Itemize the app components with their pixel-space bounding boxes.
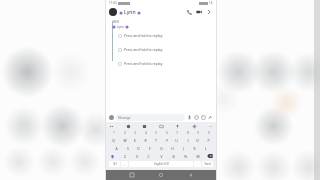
staticText: Lynn: [124, 9, 136, 16]
button[interactable]: Gallery: [201, 115, 206, 120]
staticText: D: [137, 146, 140, 151]
button[interactable]: Camera: [109, 115, 114, 120]
button[interactable]: Press and hold to replay: [118, 46, 210, 53]
staticText: Y: [166, 138, 168, 143]
button[interactable]: Keyboard tool 2: [126, 124, 131, 129]
button[interactable]: Y: [162, 136, 171, 144]
button[interactable]: 7: [172, 130, 181, 136]
button[interactable]: Shift: [108, 152, 117, 160]
staticText: E: [134, 138, 136, 143]
staticText: U: [175, 138, 178, 143]
button[interactable]: Keyboard tool 3: [142, 124, 147, 129]
button[interactable]: Video call: [196, 9, 202, 15]
button[interactable]: English (US): [129, 161, 193, 167]
button[interactable]: Keyboard tool 4: [159, 124, 164, 129]
staticText: .: [197, 162, 198, 166]
button[interactable]: Keyboard tool 6: [192, 124, 197, 129]
staticText: 0: [208, 131, 210, 135]
button[interactable]: Keyboard tool 5: [175, 124, 180, 129]
button[interactable]: Z: [120, 152, 129, 160]
button[interactable]: Back: [187, 171, 195, 179]
staticText: F: [149, 146, 151, 151]
button[interactable]: More options: [206, 9, 212, 15]
staticText: H: [171, 146, 174, 151]
button[interactable]: M: [193, 152, 202, 160]
button[interactable]: Message: [116, 114, 185, 121]
button[interactable]: !#1: [109, 161, 120, 167]
button[interactable]: .: [194, 161, 201, 167]
button[interactable]: L: [201, 144, 210, 152]
button[interactable]: O: [193, 136, 202, 144]
button[interactable]: I: [183, 136, 192, 144]
staticText: R: [144, 138, 147, 143]
staticText: M: [196, 154, 200, 159]
button[interactable]: Keyboard tool 1: [109, 124, 114, 129]
staticText: 1: [113, 131, 115, 135]
button[interactable]: 5: [151, 130, 160, 136]
button[interactable]: T: [151, 136, 160, 144]
button[interactable]: S: [123, 144, 132, 152]
staticText: I: [187, 138, 189, 143]
button[interactable]: Home: [157, 171, 165, 179]
button[interactable]: C: [144, 152, 153, 160]
button[interactable]: 2: [120, 130, 129, 136]
button[interactable]: Send: [202, 161, 213, 167]
staticText: V: [160, 154, 163, 159]
button[interactable]: W: [120, 136, 129, 144]
button[interactable]: Call: [186, 9, 192, 15]
button[interactable]: G: [157, 144, 166, 152]
button[interactable]: 3: [130, 130, 139, 136]
staticText: Q: [112, 138, 115, 143]
button[interactable]: 9: [193, 130, 202, 136]
staticText: Press and hold to replay: [124, 61, 163, 66]
button[interactable]: 4: [141, 130, 150, 136]
button[interactable]: A: [112, 144, 121, 152]
button[interactable]: F: [145, 144, 154, 152]
button[interactable]: Press and hold to replay: [118, 60, 210, 67]
staticText: 9: [197, 131, 199, 135]
staticText: L: [205, 146, 207, 151]
staticText: 5: [155, 131, 157, 135]
button[interactable]: Voice message: [187, 115, 192, 120]
button[interactable]: Emoji: [194, 115, 199, 120]
button[interactable]: D: [134, 144, 143, 152]
staticText: Press and hold to replay: [124, 33, 163, 38]
staticText: 7: [176, 131, 178, 135]
button[interactable]: Press and hold to replay: [118, 32, 210, 39]
button[interactable]: Keyboard tool 7: [208, 124, 213, 129]
button[interactable]: Q: [109, 136, 118, 144]
staticText: J: [183, 146, 184, 151]
staticText: N: [184, 154, 187, 159]
button[interactable]: P: [204, 136, 213, 144]
button[interactable]: Contact avatar: [109, 8, 117, 16]
button[interactable]: K: [190, 144, 199, 152]
button[interactable]: Backspace: [205, 152, 214, 160]
button[interactable]: V: [157, 152, 166, 160]
button[interactable]: J: [179, 144, 188, 152]
button[interactable]: ,: [121, 161, 128, 167]
button[interactable]: 0: [204, 130, 213, 136]
staticText: Lynn: [117, 25, 124, 29]
button[interactable]: U: [172, 136, 181, 144]
button[interactable]: B: [169, 152, 178, 160]
button[interactable]: H: [168, 144, 177, 152]
button[interactable]: R: [141, 136, 150, 144]
staticText: O: [196, 138, 199, 143]
staticText: ,: [124, 162, 125, 166]
button[interactable]: 6: [162, 130, 171, 136]
button[interactable]: 1: [109, 130, 118, 136]
button[interactable]: Recents: [128, 171, 136, 179]
staticText: 4: [145, 131, 147, 135]
button[interactable]: 8: [183, 130, 192, 136]
button[interactable]: Lynn: [112, 25, 129, 29]
button[interactable]: N: [181, 152, 190, 160]
button[interactable]: Attach: [208, 115, 213, 120]
staticText: 3: [134, 131, 136, 135]
button[interactable]: E: [130, 136, 139, 144]
staticText: X: [136, 154, 138, 159]
staticText: !#1: [113, 162, 117, 166]
staticText: T: [155, 138, 157, 143]
button[interactable]: Lynn: [119, 9, 186, 16]
button[interactable]: X: [132, 152, 141, 160]
staticText: W: [123, 138, 127, 143]
